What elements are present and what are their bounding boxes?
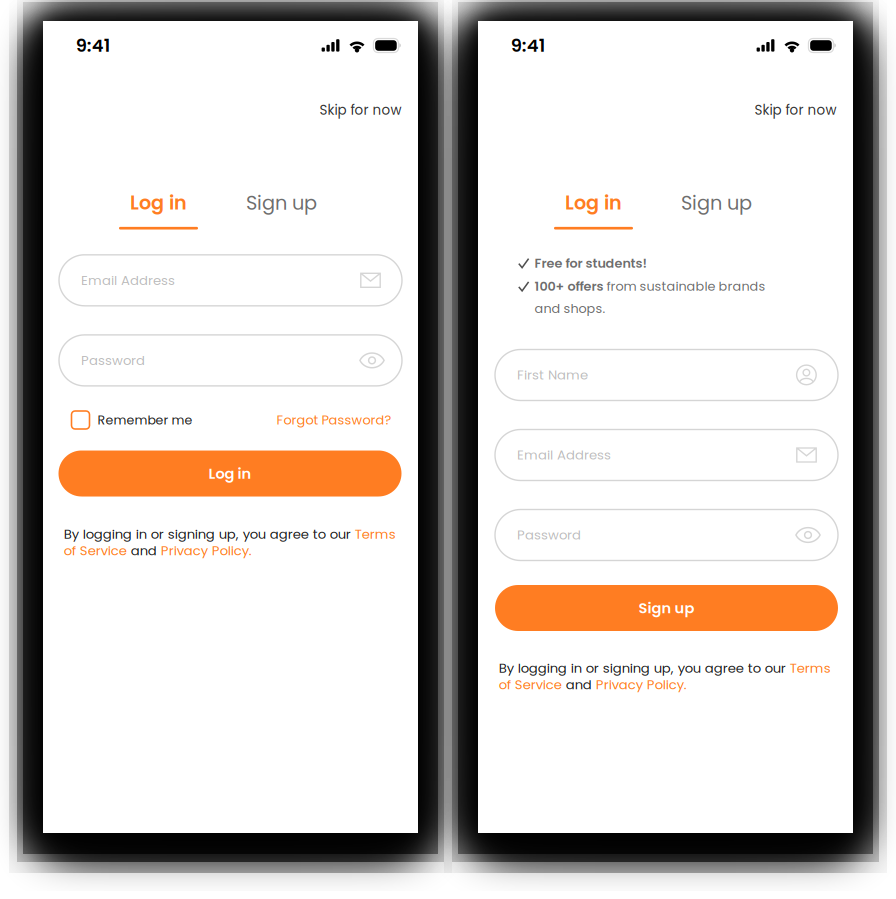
button[interactable]: Forgot Password? <box>276 410 391 430</box>
staticText: Password <box>81 351 145 370</box>
staticText: Sign up <box>638 598 694 618</box>
button[interactable]: Log in <box>58 450 401 496</box>
staticText: 9:41 <box>76 33 110 58</box>
button[interactable]: Skip for now <box>746 100 836 120</box>
staticText: By logging in or signing up, you agree t… <box>64 525 355 543</box>
staticText: Email Address <box>517 446 611 464</box>
staticText: of Service <box>499 675 562 694</box>
staticText: Log in <box>565 189 622 216</box>
staticText: Log in <box>208 463 251 484</box>
button[interactable]: First Name <box>495 349 838 400</box>
staticText: Privacy Policy. <box>596 675 687 694</box>
staticText: Sign up <box>246 189 317 216</box>
staticText: Free for students! <box>534 254 647 272</box>
staticText: and <box>562 675 596 694</box>
staticText: Email Address <box>81 271 175 290</box>
staticText: Forgot Password? <box>276 411 391 429</box>
button[interactable]: Email Address <box>59 255 402 306</box>
staticText: Log in <box>130 189 187 216</box>
button[interactable]: Sign up <box>495 585 838 631</box>
staticText: By logging in or signing up, you agree t… <box>499 659 790 677</box>
button[interactable]: Sign up <box>677 191 756 229</box>
staticText: from sustainable brands <box>603 277 765 295</box>
button[interactable]: Skip for now <box>311 100 401 120</box>
staticText: of Service <box>64 541 127 560</box>
staticText: Terms <box>790 659 831 677</box>
button[interactable]: Log in <box>554 191 633 229</box>
staticText: Sign up <box>681 189 752 216</box>
button[interactable]: Email Address <box>495 429 838 480</box>
staticText: Skip for now <box>754 101 836 119</box>
staticText: First Name <box>517 366 588 384</box>
staticText: Privacy Policy. <box>161 541 252 560</box>
staticText: Remember me <box>97 411 192 429</box>
staticText: and shops. <box>534 299 605 317</box>
button[interactable]: Log in <box>119 191 198 229</box>
staticText: 9:41 <box>511 33 545 58</box>
button[interactable]: Password <box>495 509 838 560</box>
staticText: Terms <box>355 525 396 543</box>
staticText: Password <box>517 526 581 544</box>
staticText: Skip for now <box>319 101 401 119</box>
button[interactable]: Remember me <box>71 410 192 430</box>
button[interactable]: Sign up <box>242 191 321 229</box>
button[interactable]: Password <box>59 335 402 386</box>
staticText: 100+ offers <box>534 277 603 295</box>
staticText: and <box>127 541 161 560</box>
